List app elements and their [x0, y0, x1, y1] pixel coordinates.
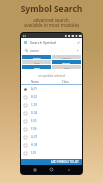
staticText: D-04: [31, 111, 38, 115]
button[interactable]: A-01: [21, 85, 82, 93]
staticText: no symbols selected: [21, 74, 82, 78]
staticText: name: [30, 48, 40, 53]
button[interactable]: Options: [52, 55, 81, 59]
staticText: ADD SYMBOLS TO LIST: [51, 160, 79, 164]
button[interactable]: Help: [52, 65, 81, 69]
staticText: F-06: [31, 127, 37, 131]
staticText: G-07: [31, 135, 38, 139]
staticText: Symbol Search: [0, 3, 103, 15]
button[interactable]: Recents: [31, 166, 38, 173]
other: Search: [25, 49, 28, 52]
button[interactable]: Menu: [21, 38, 82, 46]
staticText: A-01: [31, 87, 37, 91]
button[interactable]: Home: [48, 166, 55, 173]
staticText: Clear: [34, 61, 40, 64]
staticText: Search Symbol: [30, 40, 57, 45]
staticText: B-02: [31, 95, 37, 99]
button[interactable]: E-05: [21, 117, 82, 125]
button[interactable]: C-03: [21, 101, 82, 109]
button[interactable]: B-02: [21, 93, 82, 101]
button[interactable]: Search: [21, 46, 82, 55]
staticText: E-05: [31, 119, 37, 123]
staticText: I-09: [31, 151, 37, 155]
button[interactable]: ADD SYMBOLS TO LIST: [21, 159, 82, 165]
staticText: Filter: [34, 66, 40, 69]
staticText: Results: [62, 61, 71, 64]
staticText: Name: [31, 80, 39, 84]
staticText: Class: [62, 80, 69, 84]
staticText: H-08: [31, 143, 38, 147]
staticText: advanced search, available in most modul…: [0, 17, 103, 29]
button[interactable]: Clear: [22, 60, 51, 64]
button[interactable]: Filter: [22, 65, 51, 69]
staticText: C-03: [31, 103, 37, 107]
button[interactable]: Search: [22, 55, 51, 59]
other: Confirm: [77, 41, 80, 44]
staticText: Help: [64, 66, 70, 69]
button[interactable]: I-09: [21, 149, 82, 157]
button[interactable]: G-07: [21, 133, 82, 141]
button[interactable]: D-04: [21, 109, 82, 117]
staticText: Search: [33, 56, 41, 59]
button[interactable]: H-08: [21, 141, 82, 149]
button[interactable]: Results: [52, 60, 81, 64]
button[interactable]: Back: [65, 166, 72, 173]
staticText: Options: [62, 56, 71, 59]
button[interactable]: F-06: [21, 125, 82, 133]
